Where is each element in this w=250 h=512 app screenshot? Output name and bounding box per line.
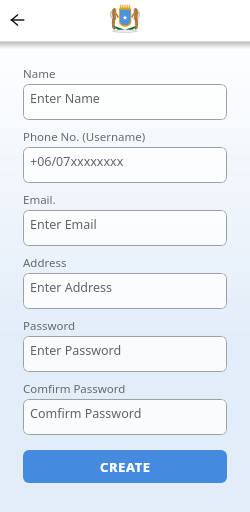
staticText: Enter Address [30, 279, 112, 296]
button[interactable]: Back [2, 5, 32, 35]
staticText: Comfirm Password [30, 405, 142, 422]
staticText: +06/07xxxxxxxx [30, 153, 124, 170]
button[interactable]: Comfirm Password [23, 399, 227, 435]
staticText: Address [23, 255, 67, 271]
staticText: Enter Password [30, 342, 122, 359]
button[interactable]: Enter Password [23, 336, 227, 372]
staticText: Enter Email [30, 216, 97, 233]
staticText: Comfirm Password [23, 381, 126, 397]
button[interactable]: CREATE [23, 450, 227, 483]
button[interactable]: +06/07xxxxxxxx [23, 147, 227, 183]
staticText: Email. [23, 192, 56, 208]
staticText: Enter Name [30, 90, 100, 107]
staticText: Password [23, 318, 76, 334]
staticText: CREATE [100, 458, 151, 476]
button[interactable]: Enter Email [23, 210, 227, 246]
staticText: Name [23, 66, 56, 82]
button[interactable]: Enter Name [23, 84, 227, 120]
staticText: Phone No. (Username) [23, 129, 146, 145]
button[interactable]: Enter Address [23, 273, 227, 309]
